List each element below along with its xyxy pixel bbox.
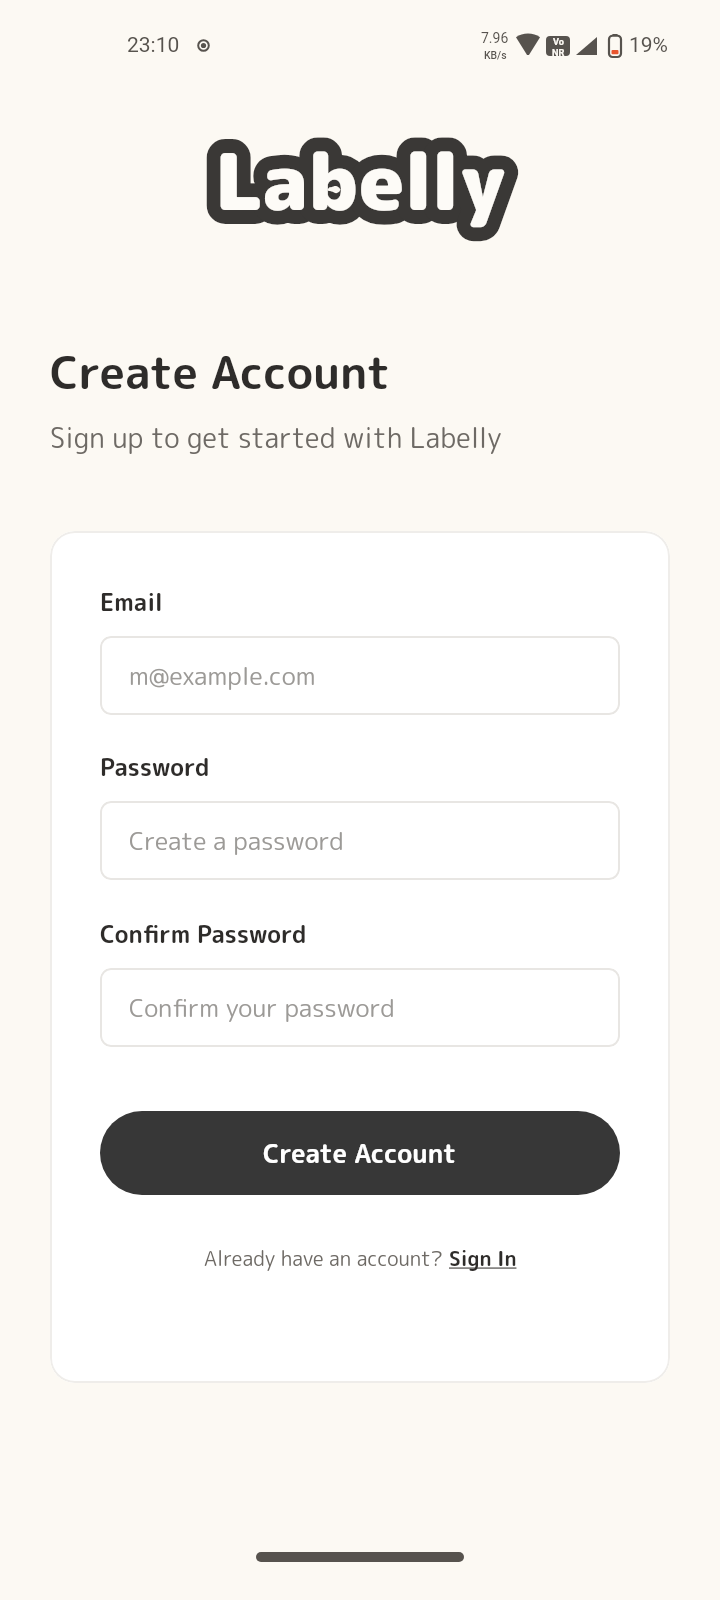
- staticText: KB/s: [484, 49, 507, 61]
- button[interactable]: Create Account: [100, 1111, 620, 1195]
- button[interactable]: Confirm your password: [100, 968, 620, 1047]
- staticText: Email: [100, 585, 163, 618]
- staticText: Create Account: [263, 1135, 457, 1171]
- staticText: Sign up to get started with Labelly: [50, 418, 502, 456]
- staticText: Create Account: [50, 340, 391, 404]
- staticText: Vo: [553, 36, 564, 47]
- staticText: Already have an account?: [204, 1244, 449, 1272]
- staticText: 19%: [629, 33, 668, 58]
- staticText: Sign In: [449, 1244, 517, 1272]
- staticText: m@example.com: [129, 658, 316, 693]
- staticText: 7.96: [481, 30, 509, 46]
- staticText: 23:10: [127, 33, 180, 58]
- button[interactable]: Sign In: [449, 1244, 517, 1272]
- staticText: NR: [552, 47, 565, 56]
- button[interactable]: Create a password: [100, 801, 620, 880]
- button[interactable]: m@example.com: [100, 636, 620, 715]
- staticText: Confirm Password: [100, 917, 307, 950]
- staticText: Create a password: [129, 823, 344, 858]
- staticText: Password: [100, 750, 210, 783]
- staticText: Confirm your password: [129, 990, 395, 1025]
